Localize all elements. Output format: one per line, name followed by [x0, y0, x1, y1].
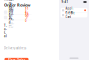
- button[interactable]: Place Order: [4, 58, 28, 60]
- staticText: 9:41: [61, 0, 68, 4]
- button[interactable]: Garlic Bread: [1, 15, 31, 20]
- staticText: Total: [4, 24, 7, 42]
- button[interactable]: Apple Pay: [61, 8, 87, 13]
- staticText: Large · Extra cheese: [9, 19, 14, 26]
- staticText: Apple Pay: [65, 7, 73, 14]
- staticText: Credit Card: [65, 12, 74, 19]
- staticText: Order Review: [4, 2, 30, 8]
- staticText: Place Order: [8, 58, 25, 60]
- staticText: Margherita Pizza: [9, 0, 14, 19]
- staticText: Side order: [9, 25, 14, 28]
- button[interactable]: Credit Card: [61, 13, 87, 17]
- staticText: $18.00: [25, 7, 29, 17]
- staticText: $6.50: [25, 12, 29, 23]
- staticText: Delivery address: [4, 46, 26, 50]
- staticText: Garlic Bread: [9, 7, 14, 24]
- button[interactable]: Margherita Pizza: [1, 10, 31, 15]
- staticText: Back: [4, 0, 9, 1]
